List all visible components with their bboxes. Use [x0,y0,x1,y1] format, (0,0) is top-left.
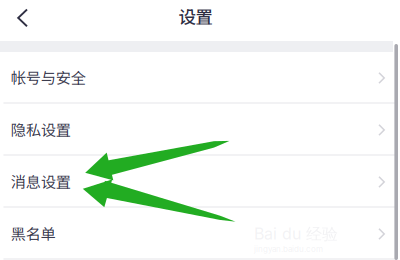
staticText: 隐私设置 [11,118,71,140]
button[interactable]: Back [0,0,40,41]
staticText: 消息设置 [11,170,71,192]
button[interactable]: 隐私设置 [3,104,396,156]
button[interactable]: 黑名单 [3,208,396,260]
staticText: 黑名单 [11,222,56,244]
staticText: Bai du 经验 [254,224,338,244]
staticText: 设置 [178,3,212,29]
button[interactable]: 帐号与安全 [3,52,396,104]
staticText: 帐号与安全 [11,66,86,88]
staticText: jingyan.baidu.com [254,244,323,254]
button[interactable]: 消息设置 [3,156,396,208]
